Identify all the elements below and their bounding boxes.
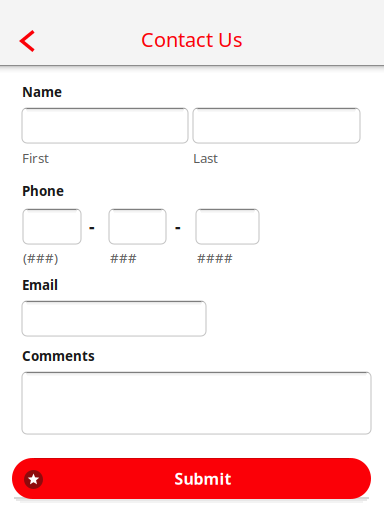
staticText: - — [89, 215, 95, 238]
button[interactable]: Phone area code — [23, 209, 81, 244]
staticText: #### — [197, 249, 233, 267]
button[interactable]: Phone line number — [196, 209, 259, 244]
staticText: Email — [22, 276, 58, 294]
staticText: ### — [110, 249, 137, 267]
staticText: - — [175, 215, 181, 238]
button[interactable]: Phone prefix — [109, 209, 166, 244]
button[interactable]: Email — [22, 301, 206, 336]
staticText: Phone — [22, 182, 64, 200]
button[interactable]: Comments — [22, 372, 371, 434]
button[interactable]: First name — [22, 108, 188, 143]
staticText: Name — [22, 83, 62, 101]
staticText: Submit — [174, 468, 231, 489]
staticText: Contact Us — [141, 26, 243, 53]
button[interactable]: Submit — [12, 458, 371, 499]
staticText: Last — [193, 149, 218, 167]
button[interactable]: Last name — [193, 108, 360, 143]
button[interactable]: Back — [6, 19, 50, 63]
staticText: (###) — [23, 249, 58, 267]
staticText: Comments — [22, 347, 95, 365]
staticText: First — [22, 149, 49, 167]
